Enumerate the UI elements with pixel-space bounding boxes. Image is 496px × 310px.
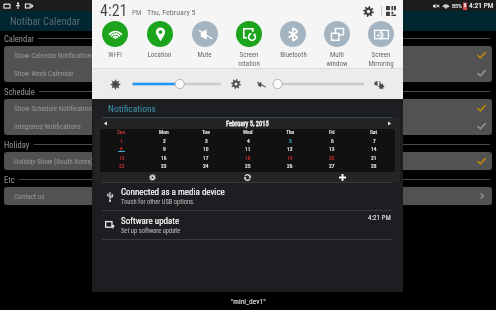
button[interactable]: [273, 77, 365, 91]
staticText: 17: [203, 155, 209, 161]
staticText: Notifications: [108, 103, 156, 114]
staticText: Bluetooth: [280, 51, 307, 59]
button[interactable]: Refresh: [242, 172, 252, 182]
staticText: Integrated Notifications: [14, 122, 81, 130]
button[interactable]: Connected as a media device: [92, 183, 403, 210]
staticText: 24: [203, 163, 209, 169]
staticText: Show Calendar Notifications: [14, 51, 95, 59]
staticText: 10: [203, 146, 209, 152]
button[interactable]: Screen Mirroring: [359, 21, 403, 68]
button[interactable]: Show Schedule Notifications: [4, 99, 492, 117]
staticText: 19: [287, 155, 293, 161]
staticText: 14: [371, 146, 377, 152]
staticText: Set up software update: [121, 227, 181, 235]
staticText: 9: [163, 146, 166, 152]
button[interactable]: Bluetooth: [271, 21, 315, 68]
staticText: 25: [245, 163, 251, 169]
staticText: 5: [289, 138, 292, 144]
staticText: Thu: [286, 129, 295, 135]
staticText: Mute: [197, 51, 212, 59]
staticText: 1: [120, 138, 123, 144]
button[interactable]: Show Week Calendar: [4, 64, 492, 82]
staticText: 28: [371, 163, 377, 169]
staticText: 15: [119, 155, 125, 161]
staticText: Schedule: [4, 87, 35, 97]
button[interactable]: Multi window: [315, 21, 359, 68]
button[interactable]: Sound settings: [372, 77, 386, 91]
staticText: 2: [163, 138, 166, 144]
button[interactable]: Contact us: [4, 187, 492, 205]
staticText: Holiday: [4, 140, 30, 150]
staticText: "mini_dev1": [231, 297, 266, 306]
staticText: 3: [205, 138, 208, 144]
staticText: Wi-Fi: [108, 51, 122, 59]
staticText: Tue: [202, 129, 210, 135]
staticText: Mon: [159, 129, 169, 135]
button[interactable]: Mute volume: [254, 77, 268, 91]
staticText: 11: [245, 146, 251, 152]
staticText: 26: [287, 163, 293, 169]
staticText: 6: [331, 138, 334, 144]
staticText: 21: [371, 155, 377, 161]
button[interactable]: Previous month: [100, 118, 111, 129]
staticText: February 5, 2015: [226, 120, 269, 128]
staticText: Multi window: [326, 51, 348, 68]
staticText: Sun: [117, 129, 126, 135]
staticText: Screen rotation: [238, 51, 260, 68]
button[interactable]: Screen rotation: [227, 21, 271, 68]
staticText: Etc: [4, 175, 15, 185]
staticText: Show Week Calendar: [14, 69, 74, 77]
staticText: 4: [247, 138, 250, 144]
button[interactable]: Brightness settings: [229, 77, 243, 91]
button[interactable]: [128, 77, 222, 91]
button[interactable]: Location: [137, 21, 182, 68]
staticText: Wed: [243, 129, 253, 135]
staticText: 12: [287, 146, 293, 152]
staticText: Fri: [329, 129, 335, 135]
staticText: 22: [119, 163, 125, 169]
button[interactable]: Auto brightness: [108, 77, 122, 91]
button[interactable]: Wi-Fi: [92, 21, 137, 68]
button[interactable]: Holiday Show (South Korea): [4, 152, 492, 170]
staticText: Holiday Show (South Korea): [14, 157, 94, 165]
staticText: Sat: [370, 129, 378, 135]
staticText: 27: [329, 163, 335, 169]
button[interactable]: Settings: [359, 2, 377, 20]
staticText: PM: [132, 9, 142, 17]
staticText: 7: [373, 138, 376, 144]
staticText: 4:21 PM: [469, 1, 494, 10]
button[interactable]: Software update: [92, 211, 403, 239]
staticText: Software update: [121, 216, 180, 227]
staticText: 85%: [452, 2, 462, 9]
button[interactable]: Next month: [384, 118, 395, 129]
button[interactable]: Edit quick settings: [382, 2, 400, 20]
button[interactable]: Calendar settings: [147, 172, 157, 182]
button[interactable]: Integrated Notifications: [4, 117, 492, 135]
button[interactable]: Add event: [337, 172, 347, 182]
staticText: Notibar Calendar: [10, 15, 80, 27]
staticText: Show Schedule Notifications: [14, 104, 95, 112]
staticText: 8: [120, 146, 123, 152]
staticText: 13: [329, 146, 335, 152]
staticText: Calendar: [4, 34, 34, 44]
staticText: 23: [161, 163, 167, 169]
staticText: Connected as a media device: [121, 187, 225, 198]
staticText: 4:21: [100, 1, 128, 20]
staticText: 4:21 PM: [368, 214, 391, 222]
staticText: 20: [329, 155, 335, 161]
staticText: 16: [161, 155, 167, 161]
staticText: Touch for other USB options.: [121, 198, 195, 206]
button[interactable]: Mute: [182, 21, 227, 68]
button[interactable]: Show Calendar Notifications: [4, 46, 492, 64]
staticText: Contact us: [14, 192, 45, 200]
staticText: Location: [147, 51, 172, 59]
staticText: Thu, February 5: [147, 8, 196, 17]
staticText: 18: [245, 155, 251, 161]
staticText: Screen Mirroring: [368, 51, 394, 68]
